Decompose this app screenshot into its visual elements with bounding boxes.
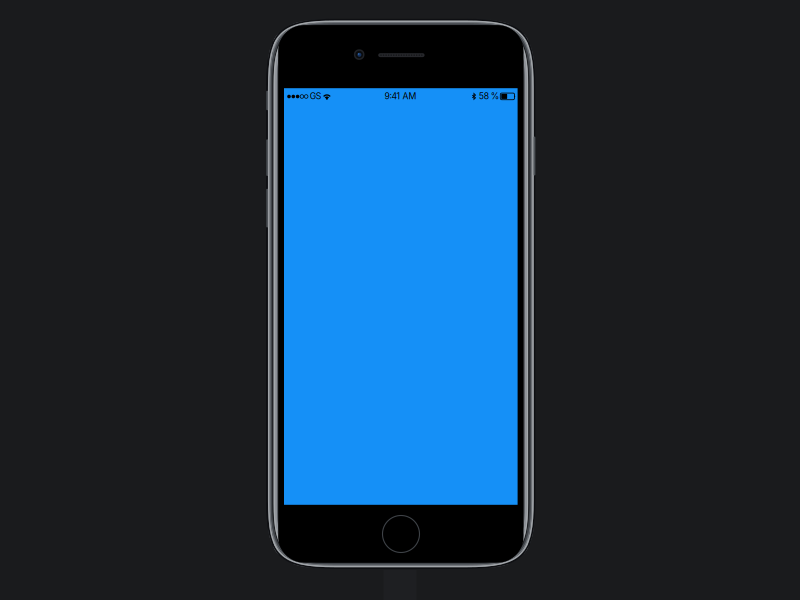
staticText: 58 % <box>479 91 500 101</box>
staticText: 9:41 AM <box>385 91 417 101</box>
staticText: GS <box>310 91 322 101</box>
